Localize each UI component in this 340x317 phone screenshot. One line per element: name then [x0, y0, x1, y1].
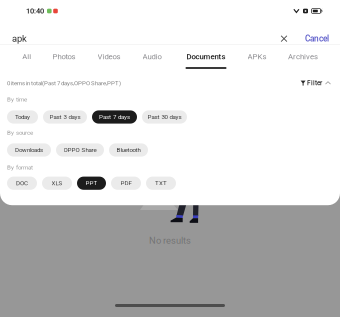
button[interactable]: Photos — [47, 49, 81, 73]
staticText: DOC — [16, 180, 28, 187]
staticText: Documents — [186, 52, 225, 61]
button[interactable]: Documents — [182, 49, 230, 73]
staticText: Today — [15, 113, 30, 121]
button[interactable]: Videos — [92, 49, 126, 73]
button[interactable]: Downloads — [7, 143, 51, 157]
staticText: By time — [7, 96, 27, 103]
button[interactable]: Archives — [283, 49, 323, 73]
button[interactable]: XLS — [42, 177, 72, 190]
staticText: Past 7 days — [99, 113, 130, 121]
staticText: Videos — [97, 52, 120, 61]
staticText: APKs — [247, 52, 266, 61]
staticText: Audio — [142, 52, 161, 61]
button[interactable]: Bluetooth — [109, 143, 148, 157]
staticText: Photos — [52, 52, 75, 61]
button[interactable]: Past 30 days — [142, 110, 187, 124]
staticText: Archives — [288, 52, 318, 61]
button[interactable]: DOC — [7, 177, 37, 190]
staticText: OPPO Share — [63, 146, 96, 154]
staticText: TXT — [155, 180, 167, 187]
button[interactable]: Cancel — [305, 34, 329, 43]
staticText: By format — [7, 164, 33, 171]
staticText: XLS — [51, 180, 62, 187]
staticText: Filter — [307, 79, 322, 87]
button[interactable]: Today — [7, 110, 38, 124]
button[interactable]: PPT — [77, 177, 106, 190]
staticText: PDF — [120, 180, 131, 187]
button[interactable]: APKs — [240, 49, 274, 73]
staticText: No results — [149, 235, 191, 246]
button[interactable]: OPPO Share — [56, 143, 104, 157]
staticText: Bluetooth — [116, 146, 140, 154]
staticText: Cancel — [305, 34, 329, 43]
staticText: 10:40 — [26, 7, 44, 15]
staticText: apk — [12, 33, 27, 44]
button[interactable]: Past 7 days — [92, 110, 137, 124]
staticText: All — [22, 52, 31, 61]
staticText: Downloads — [15, 146, 43, 154]
button[interactable]: Past 3 days — [43, 110, 87, 124]
staticText: Past 3 days — [49, 113, 80, 121]
button[interactable]: PDF — [111, 177, 141, 190]
button[interactable]: Audio — [135, 49, 169, 73]
staticText: 0 items in total(Past 7 days,OPPO Share,… — [7, 80, 121, 87]
button[interactable]: Clear search text — [276, 31, 292, 47]
staticText: PPT — [85, 180, 97, 187]
button[interactable]: All — [10, 49, 44, 73]
staticText: Past 30 days — [147, 113, 181, 121]
button[interactable]: TXT — [146, 177, 176, 190]
staticText: By source — [7, 129, 33, 136]
button[interactable]: Filter — [301, 79, 330, 87]
